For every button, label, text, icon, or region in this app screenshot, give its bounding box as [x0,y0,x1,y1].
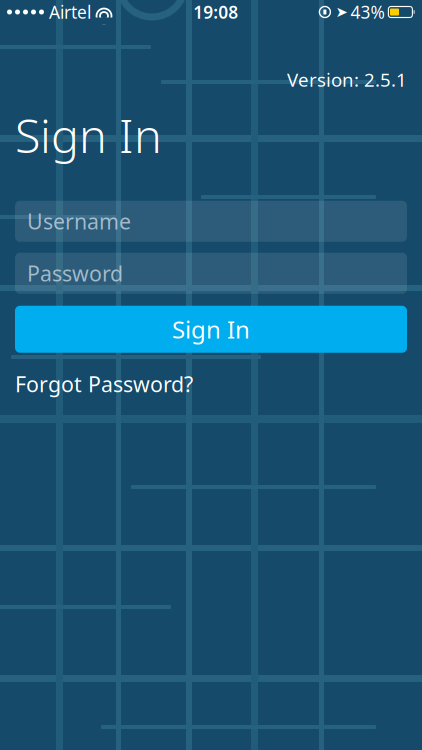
staticText: Password [27,259,123,287]
button[interactable]: Forgot Password? [15,364,407,404]
staticText: Airtel [49,0,91,23]
staticText: Forgot Password? [15,370,193,398]
staticText: Sign In [172,313,250,345]
staticText: Version: 2.5.1 [287,67,407,92]
staticText: Sign In [15,104,162,166]
staticText: 19:08 [193,0,238,23]
button[interactable]: Sign In [15,306,407,353]
staticText: ➤ [335,4,347,20]
staticText: Username [27,207,131,235]
staticText: 43% [350,0,384,23]
